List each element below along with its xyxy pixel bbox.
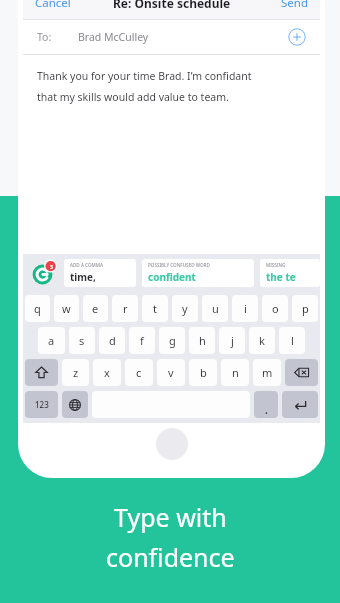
button[interactable]: l	[279, 327, 305, 354]
staticText: p	[302, 301, 309, 316]
staticText: confident	[148, 270, 196, 284]
staticText: Type with	[114, 500, 227, 534]
button[interactable]: Cancel	[23, 0, 83, 16]
staticText: 123	[35, 399, 49, 410]
staticText: d	[109, 333, 116, 348]
staticText: e	[92, 301, 99, 316]
button[interactable]: p	[292, 295, 318, 322]
staticText: y	[182, 301, 188, 316]
button[interactable]: .	[254, 391, 278, 418]
button[interactable]: Return	[282, 391, 318, 418]
staticText: Re: Onsite schedule	[113, 0, 231, 11]
button[interactable]: Add recipient	[288, 28, 306, 46]
button[interactable]: ADD A COMMA	[64, 259, 136, 287]
button[interactable]: v	[157, 359, 185, 386]
button[interactable]: b	[189, 359, 217, 386]
button[interactable]: Shift	[25, 359, 58, 386]
button[interactable]: k	[249, 327, 275, 354]
button[interactable]: r	[112, 295, 138, 322]
staticText: w	[62, 301, 71, 316]
staticText: q	[34, 301, 41, 316]
staticText: j	[231, 333, 234, 348]
staticText: n	[232, 365, 239, 380]
staticText: Send	[281, 0, 308, 11]
staticText: 3	[50, 264, 53, 271]
staticText: u	[212, 301, 219, 316]
staticText: the te	[266, 270, 296, 284]
staticText: b	[200, 365, 207, 380]
staticText: g	[169, 333, 176, 348]
button[interactable]: Change keyboard	[62, 391, 88, 418]
button[interactable]: h	[189, 327, 215, 354]
button[interactable]: j	[219, 327, 245, 354]
staticText: ADD A COMMA	[70, 262, 103, 268]
staticText: Brad McCulley	[78, 30, 149, 44]
button[interactable]: y	[172, 295, 198, 322]
staticText: Thank you for your time Brad. I’m confid…	[37, 69, 252, 83]
button[interactable]: POSSIBLY CONFUSED WORD	[142, 259, 254, 287]
button[interactable]: a	[38, 327, 65, 354]
button[interactable]: w	[54, 295, 79, 322]
staticText: POSSIBLY CONFUSED WORD	[148, 262, 210, 268]
staticText: s	[79, 333, 85, 348]
staticText: Cancel	[35, 0, 71, 11]
staticText: t	[153, 301, 157, 316]
staticText: i	[244, 301, 247, 316]
button[interactable]: Home	[156, 428, 188, 460]
button[interactable]: f	[129, 327, 155, 354]
staticText: v	[168, 365, 174, 380]
button[interactable]: q	[25, 295, 50, 322]
button[interactable]: o	[262, 295, 288, 322]
staticText: l	[291, 333, 294, 348]
button[interactable]: Send	[269, 0, 320, 16]
staticText: x	[104, 365, 110, 380]
button[interactable]: s	[69, 327, 95, 354]
staticText: c	[136, 365, 142, 380]
button[interactable]: 123	[25, 391, 58, 418]
staticText: confidence	[106, 540, 235, 574]
button[interactable]: n	[221, 359, 249, 386]
button[interactable]: MISSING	[260, 259, 320, 287]
button[interactable]: c	[125, 359, 153, 386]
staticText: f	[140, 333, 144, 348]
button[interactable]: m	[253, 359, 281, 386]
button[interactable]: i	[232, 295, 258, 322]
staticText: o	[272, 301, 279, 316]
button[interactable]: z	[62, 359, 89, 386]
staticText: m	[262, 365, 273, 380]
button[interactable]: t	[142, 295, 168, 322]
button[interactable]: Backspace	[285, 359, 318, 386]
button[interactable]: u	[202, 295, 228, 322]
button[interactable]: d	[99, 327, 125, 354]
staticText: MISSING	[266, 262, 286, 268]
staticText: To:	[37, 30, 52, 44]
staticText: that my skills would add value to team.	[37, 90, 229, 104]
staticText: k	[259, 333, 265, 348]
button[interactable]: g	[159, 327, 185, 354]
staticText: time,	[70, 270, 96, 284]
staticText: a	[48, 333, 55, 348]
staticText: r	[123, 301, 128, 316]
button[interactable]: Grammarly	[29, 258, 59, 288]
button[interactable]: e	[83, 295, 108, 322]
button[interactable]: x	[93, 359, 121, 386]
staticText: z	[73, 365, 79, 380]
staticText: h	[199, 333, 206, 348]
staticText: .	[265, 403, 268, 417]
